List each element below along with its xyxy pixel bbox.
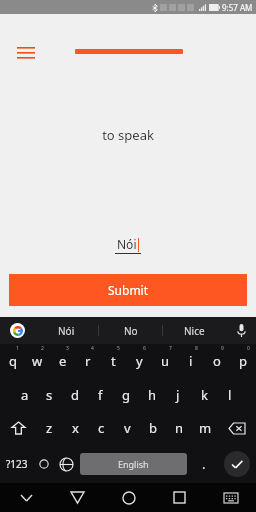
staticText: to speak bbox=[102, 126, 154, 144]
staticText: . bbox=[202, 455, 206, 473]
staticText: i bbox=[189, 352, 193, 370]
staticText: Nice bbox=[184, 324, 205, 338]
button[interactable]: h bbox=[139, 378, 165, 411]
button[interactable]: b bbox=[140, 411, 166, 445]
staticText: No bbox=[124, 324, 138, 338]
staticText: w bbox=[32, 352, 43, 370]
staticText: 0 bbox=[247, 345, 250, 352]
staticText: 9 bbox=[221, 345, 224, 352]
button[interactable]: Switch keyboard bbox=[205, 483, 256, 512]
button[interactable]: Change language bbox=[55, 445, 77, 483]
staticText: a bbox=[21, 386, 29, 404]
staticText: 6 bbox=[143, 345, 146, 352]
button[interactable]: 0 bbox=[230, 344, 256, 378]
staticText: f bbox=[98, 386, 103, 404]
button[interactable]: Back bbox=[52, 483, 103, 512]
staticText: e bbox=[59, 352, 67, 370]
button[interactable]: Voice input bbox=[226, 317, 256, 344]
staticText: q bbox=[9, 352, 17, 370]
button[interactable]: k bbox=[191, 378, 217, 411]
button[interactable]: v bbox=[114, 411, 140, 445]
staticText: 9:57 AM bbox=[222, 2, 253, 13]
button[interactable]: d bbox=[62, 378, 87, 411]
button[interactable]: Submit bbox=[9, 274, 247, 306]
button[interactable]: 8 bbox=[178, 344, 204, 378]
staticText: r bbox=[85, 352, 91, 370]
staticText: n bbox=[175, 419, 184, 437]
button[interactable]: c bbox=[88, 411, 114, 445]
staticText: u bbox=[161, 352, 170, 370]
button[interactable]: Emoji bbox=[33, 445, 55, 483]
button[interactable]: Backspace bbox=[218, 411, 256, 445]
staticText: g bbox=[122, 386, 130, 404]
button[interactable]: ?123 bbox=[0, 445, 33, 483]
staticText: y bbox=[136, 352, 143, 370]
button[interactable]: Recent apps bbox=[154, 483, 205, 512]
button[interactable]: Hide keyboard bbox=[0, 483, 52, 512]
button[interactable]: l bbox=[217, 378, 243, 411]
button[interactable]: Enter bbox=[217, 445, 256, 483]
button[interactable]: z bbox=[37, 411, 62, 445]
staticText: h bbox=[148, 386, 157, 404]
button[interactable]: f bbox=[87, 378, 113, 411]
staticText: Nói bbox=[58, 324, 75, 338]
button[interactable]: . bbox=[190, 445, 217, 483]
staticText: z bbox=[46, 419, 53, 437]
button[interactable]: m bbox=[192, 411, 218, 445]
staticText: x bbox=[72, 419, 79, 437]
staticText: d bbox=[71, 386, 79, 404]
button[interactable]: English bbox=[80, 453, 187, 475]
button[interactable]: Shift bbox=[0, 411, 37, 445]
button[interactable]: 3 bbox=[50, 344, 75, 378]
staticText: 3 bbox=[66, 345, 69, 352]
button[interactable]: Nice bbox=[163, 317, 226, 344]
button[interactable]: g bbox=[113, 378, 139, 411]
button[interactable]: Menu bbox=[14, 44, 38, 62]
button[interactable]: x bbox=[62, 411, 88, 445]
button[interactable]: n bbox=[166, 411, 192, 445]
button[interactable]: Google bbox=[0, 317, 34, 344]
button[interactable]: Nói bbox=[34, 317, 98, 344]
button[interactable]: j bbox=[165, 378, 191, 411]
staticText: 8 bbox=[195, 345, 198, 352]
button[interactable]: 1 bbox=[0, 344, 25, 378]
staticText: m bbox=[199, 419, 212, 437]
button[interactable]: 6 bbox=[126, 344, 152, 378]
button[interactable]: Home bbox=[103, 483, 154, 512]
staticText: k bbox=[201, 386, 208, 404]
button[interactable]: 9 bbox=[204, 344, 230, 378]
button[interactable]: 2 bbox=[25, 344, 50, 378]
button[interactable]: 5 bbox=[100, 344, 126, 378]
button[interactable]: s bbox=[37, 378, 62, 411]
staticText: Nói bbox=[117, 236, 137, 252]
staticText: ?123 bbox=[6, 457, 28, 471]
staticText: s bbox=[46, 386, 53, 404]
staticText: j bbox=[176, 386, 180, 404]
staticText: Submit bbox=[108, 282, 149, 298]
staticText: o bbox=[213, 352, 221, 370]
staticText: p bbox=[239, 352, 247, 370]
staticText: 4 bbox=[91, 345, 94, 352]
button[interactable]: 4 bbox=[75, 344, 100, 378]
staticText: b bbox=[149, 419, 157, 437]
staticText: 2 bbox=[41, 345, 44, 352]
button[interactable]: No bbox=[99, 317, 162, 344]
staticText: English bbox=[118, 458, 149, 470]
button[interactable]: 7 bbox=[152, 344, 178, 378]
staticText: t bbox=[111, 352, 116, 370]
button[interactable]: a bbox=[12, 378, 37, 411]
staticText: 5 bbox=[117, 345, 120, 352]
staticText: l bbox=[228, 386, 232, 404]
staticText: c bbox=[98, 419, 105, 437]
staticText: 1 bbox=[16, 345, 19, 352]
staticText: v bbox=[124, 419, 131, 437]
staticText: 7 bbox=[169, 345, 172, 352]
